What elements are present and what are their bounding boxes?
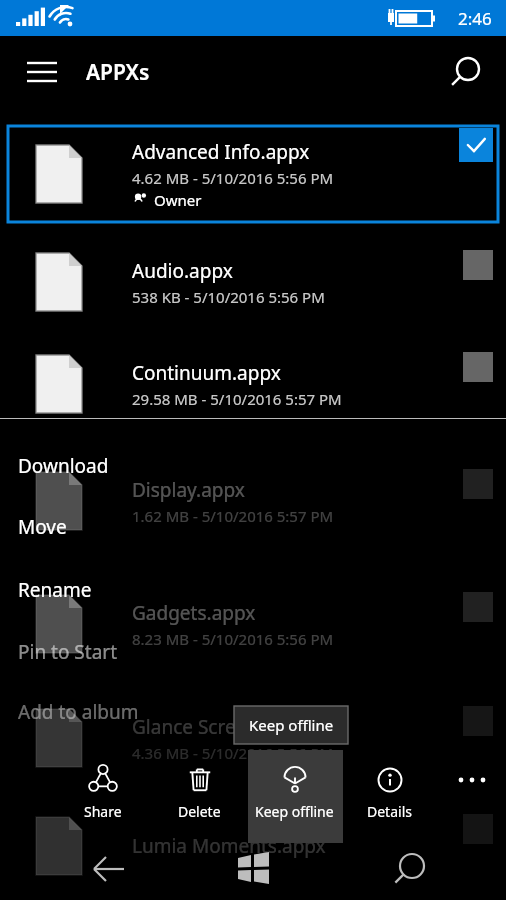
staticText: Gadgets.appx: [132, 600, 256, 626]
button[interactable]: Audio.appx: [0, 236, 506, 328]
staticText: Move: [18, 514, 67, 540]
staticText: Delete: [178, 802, 221, 821]
staticText: Share: [84, 802, 122, 821]
staticText: Keep offline: [249, 715, 334, 735]
button[interactable]: Select Advanced Info.appx: [459, 128, 493, 162]
button[interactable]: Rename: [0, 569, 240, 611]
button[interactable]: Search: [440, 46, 492, 98]
staticText: 538 KB - 5/10/2016 5:56 PM: [132, 287, 325, 307]
staticText: APPXs: [86, 58, 150, 87]
staticText: Owner: [154, 190, 202, 210]
button[interactable]: Details: [342, 752, 436, 840]
staticText: 1.62 MB - 5/10/2016 5:57 PM: [132, 506, 334, 526]
staticText: Audio.appx: [132, 258, 233, 284]
button[interactable]: Advanced Info.appx: [0, 126, 506, 222]
button[interactable]: Share: [56, 752, 150, 840]
button[interactable]: Move: [0, 506, 240, 548]
button[interactable]: Continuum.appx: [0, 338, 506, 430]
button[interactable]: Lumia Moments.appx: [0, 800, 506, 892]
staticText: 2:46: [458, 7, 492, 30]
staticText: 4.62 MB - 5/10/2016 5:56 PM: [132, 168, 334, 188]
staticText: Continuum.appx: [132, 360, 281, 386]
staticText: Keep offline: [255, 802, 334, 821]
staticText: Glance Screen.appx: [132, 714, 307, 740]
staticText: 4.36 MB - 5/10/2016 5:56 PM: [132, 743, 334, 763]
button[interactable]: Delete: [152, 752, 246, 840]
button[interactable]: Back: [68, 841, 124, 897]
button[interactable]: Glance Screen.appx: [0, 692, 506, 784]
button[interactable]: Start: [225, 841, 281, 897]
button[interactable]: Download: [0, 445, 240, 487]
button[interactable]: Search: [382, 841, 438, 897]
staticText: Display.appx: [132, 477, 245, 503]
staticText: 29.58 MB - 5/10/2016 5:57 PM: [132, 389, 342, 409]
button[interactable]: Gadgets.appx: [0, 578, 506, 670]
button[interactable]: Keep offline: [247, 752, 341, 840]
staticText: Add to album: [18, 699, 139, 725]
staticText: 8.23 MB - 5/10/2016 5:56 PM: [132, 629, 334, 649]
staticText: Lumia Moments.appx: [132, 833, 326, 859]
button[interactable]: Pin to Start: [0, 631, 240, 673]
button[interactable]: More options: [444, 756, 500, 808]
button[interactable]: Display.appx: [0, 455, 506, 547]
staticText: Rename: [18, 577, 92, 603]
button[interactable]: Menu: [18, 48, 66, 96]
staticText: Download: [18, 453, 109, 479]
staticText: Details: [367, 802, 412, 821]
staticText: Advanced Info.appx: [132, 139, 310, 165]
button[interactable]: Add to album: [0, 691, 240, 733]
staticText: Pin to Start: [18, 639, 118, 665]
